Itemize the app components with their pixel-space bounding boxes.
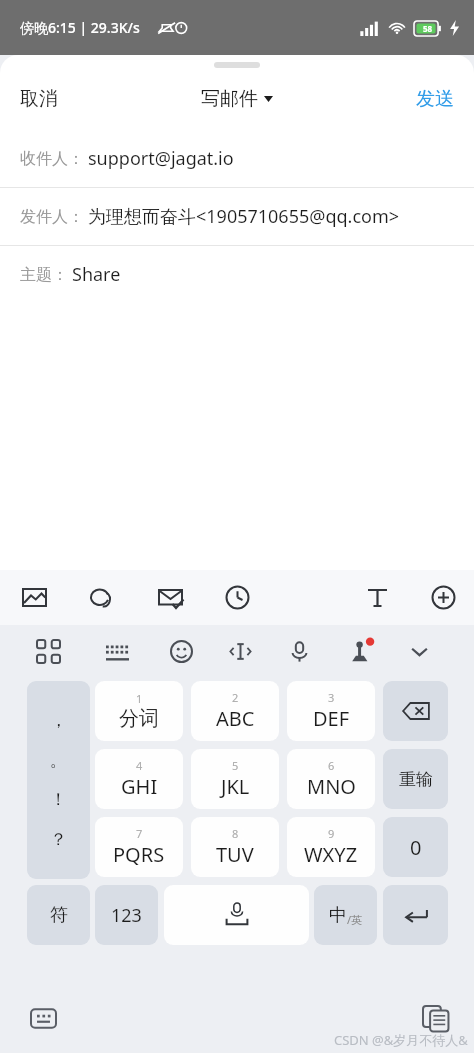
button[interactable]: 写邮件 (193, 79, 281, 119)
staticText: 符 (50, 904, 68, 927)
button[interactable]: Cursor (222, 633, 258, 669)
staticText: ！ (50, 789, 67, 810)
staticText: 为理想而奋斗<1905710655@qq.com> (88, 204, 400, 229)
button[interactable]: Text format (361, 581, 394, 614)
staticText: 中 (329, 904, 347, 927)
button[interactable]: Space (164, 885, 309, 945)
staticText: 发件人： (20, 207, 84, 227)
staticText: DEF (313, 705, 350, 732)
staticText: MNO (307, 773, 356, 800)
button[interactable]: 123 (95, 885, 158, 945)
staticText: 写邮件 (201, 87, 258, 111)
staticText: 123 (111, 903, 142, 928)
button[interactable]: 符 (27, 885, 90, 945)
button[interactable]: 1 (95, 681, 183, 741)
staticText: 2 (232, 690, 239, 705)
button[interactable]: 6 (287, 749, 375, 809)
button[interactable]: 3 (287, 681, 375, 741)
button[interactable]: 9 (287, 817, 375, 877)
staticText: 4 (136, 758, 143, 773)
button[interactable]: 发送 (396, 77, 474, 121)
staticText: Share (72, 262, 121, 287)
staticText: 7 (136, 826, 143, 841)
staticText: TUV (216, 841, 254, 868)
staticText: 主题： (20, 265, 68, 285)
staticText: 。 (50, 750, 67, 771)
button[interactable]: Apps (30, 633, 66, 669)
staticText: 58 (423, 23, 433, 34)
button[interactable]: 8 (191, 817, 279, 877)
button[interactable]: 重输 (383, 749, 448, 809)
staticText: 9 (328, 826, 335, 841)
button[interactable]: Undo (85, 581, 118, 614)
staticText: support@jagat.io (88, 146, 234, 171)
button[interactable]: Delete (383, 681, 448, 741)
button[interactable]: 2 (191, 681, 279, 741)
button[interactable]: Clipboard (414, 997, 456, 1039)
staticText: JKL (221, 773, 250, 800)
button[interactable]: Settings (342, 633, 378, 669)
staticText: 0 (410, 834, 422, 861)
staticText: 3 (328, 690, 335, 705)
button[interactable]: 收件人： (0, 130, 474, 187)
staticText: CSDN @&岁月不待人& (334, 1031, 468, 1049)
button[interactable]: 取消 (0, 77, 78, 121)
staticText: 1 (136, 691, 143, 706)
button[interactable]: 7 (95, 817, 183, 877)
staticText: WXYZ (304, 841, 358, 868)
button[interactable]: Enter (383, 885, 448, 945)
staticText: ABC (216, 705, 255, 732)
staticText: 重输 (399, 769, 433, 790)
button[interactable]: Emoji (163, 633, 199, 669)
button[interactable]: 0 (383, 817, 448, 877)
button[interactable]: 主题： (0, 246, 474, 303)
button[interactable]: Schedule (221, 581, 254, 614)
button[interactable]: 发件人： (0, 188, 474, 245)
staticText: 6 (328, 758, 335, 773)
staticText: 收件人： (20, 149, 84, 169)
button[interactable]: 4 (95, 749, 183, 809)
staticText: 傍晚6:15 | 29.3K/s (20, 18, 140, 37)
staticText: 取消 (20, 87, 58, 111)
staticText: ？ (50, 829, 67, 850)
staticText: 8 (232, 826, 239, 841)
button[interactable]: 中 (314, 885, 377, 945)
button[interactable]: Receipt (154, 581, 187, 614)
button[interactable]: More (427, 581, 460, 614)
staticText: GHI (121, 773, 158, 800)
button[interactable]: 5 (191, 749, 279, 809)
staticText: ， (50, 710, 67, 731)
button[interactable]: Insert image (18, 581, 51, 614)
staticText: /英 (347, 912, 363, 927)
button[interactable]: ， (27, 681, 90, 879)
button[interactable]: Voice (281, 633, 317, 669)
button[interactable]: Keyboard (22, 997, 64, 1039)
staticText: 发送 (416, 87, 454, 111)
button[interactable]: Hide keyboard (401, 633, 437, 669)
staticText: 分词 (119, 706, 159, 731)
staticText: 5 (232, 758, 239, 773)
staticText: PQRS (113, 841, 165, 868)
button[interactable]: Keyboard layout (99, 633, 135, 669)
